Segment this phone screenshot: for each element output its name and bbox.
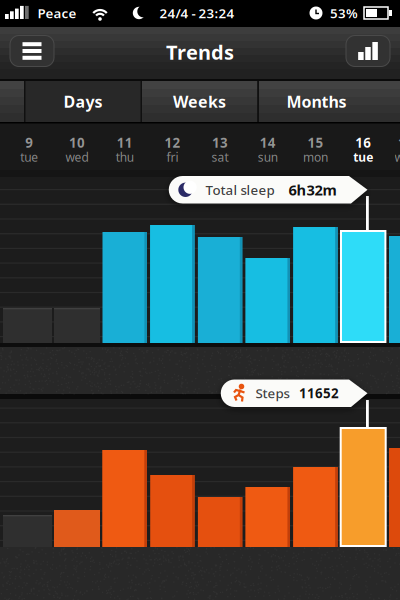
button[interactable]: 9 xyxy=(6,123,53,170)
button[interactable]: Menu xyxy=(10,35,54,66)
staticText: tue xyxy=(353,149,373,165)
button[interactable]: 15 xyxy=(292,123,339,170)
button[interactable]: 16 xyxy=(340,123,387,170)
staticText: Peace xyxy=(37,4,76,22)
button[interactable]: 14 xyxy=(244,123,291,170)
staticText: 17 xyxy=(398,134,400,151)
staticText: Months xyxy=(286,91,346,112)
staticText: Trends xyxy=(166,39,234,65)
staticText: 6h32m xyxy=(288,180,336,200)
button[interactable]: Days xyxy=(25,81,141,122)
staticText: Steps xyxy=(255,384,289,402)
staticText: 11 xyxy=(117,134,133,151)
button[interactable]: 13 xyxy=(197,123,244,170)
staticText: 53% xyxy=(330,4,358,22)
staticText: 14 xyxy=(260,134,276,151)
staticText: 12 xyxy=(164,134,180,151)
staticText: 10 xyxy=(69,134,85,151)
staticText: 9 xyxy=(25,134,33,151)
button[interactable]: 10 xyxy=(53,123,100,170)
staticText: Weeks xyxy=(173,91,226,112)
staticText: fri xyxy=(166,149,178,165)
staticText: sun xyxy=(258,149,278,165)
staticText: wed xyxy=(65,149,88,165)
staticText: sat xyxy=(212,149,229,165)
staticText: mon xyxy=(303,149,328,165)
button[interactable]: Chart options xyxy=(346,35,390,66)
staticText: 24/4 - 23:24 xyxy=(159,4,234,22)
button[interactable]: Months xyxy=(258,81,375,122)
staticText: Total sleep xyxy=(205,181,274,199)
button[interactable]: 12 xyxy=(149,123,196,170)
button[interactable]: 11 xyxy=(101,123,148,170)
staticText: tue xyxy=(20,149,38,165)
staticText: 16 xyxy=(355,134,371,151)
staticText: 11652 xyxy=(299,384,339,402)
staticText: thu xyxy=(116,149,134,165)
staticText: 13 xyxy=(212,134,228,151)
staticText: 15 xyxy=(307,134,323,151)
button[interactable]: Weeks xyxy=(141,81,257,122)
staticText: wed xyxy=(394,149,400,165)
staticText: Days xyxy=(63,91,102,112)
